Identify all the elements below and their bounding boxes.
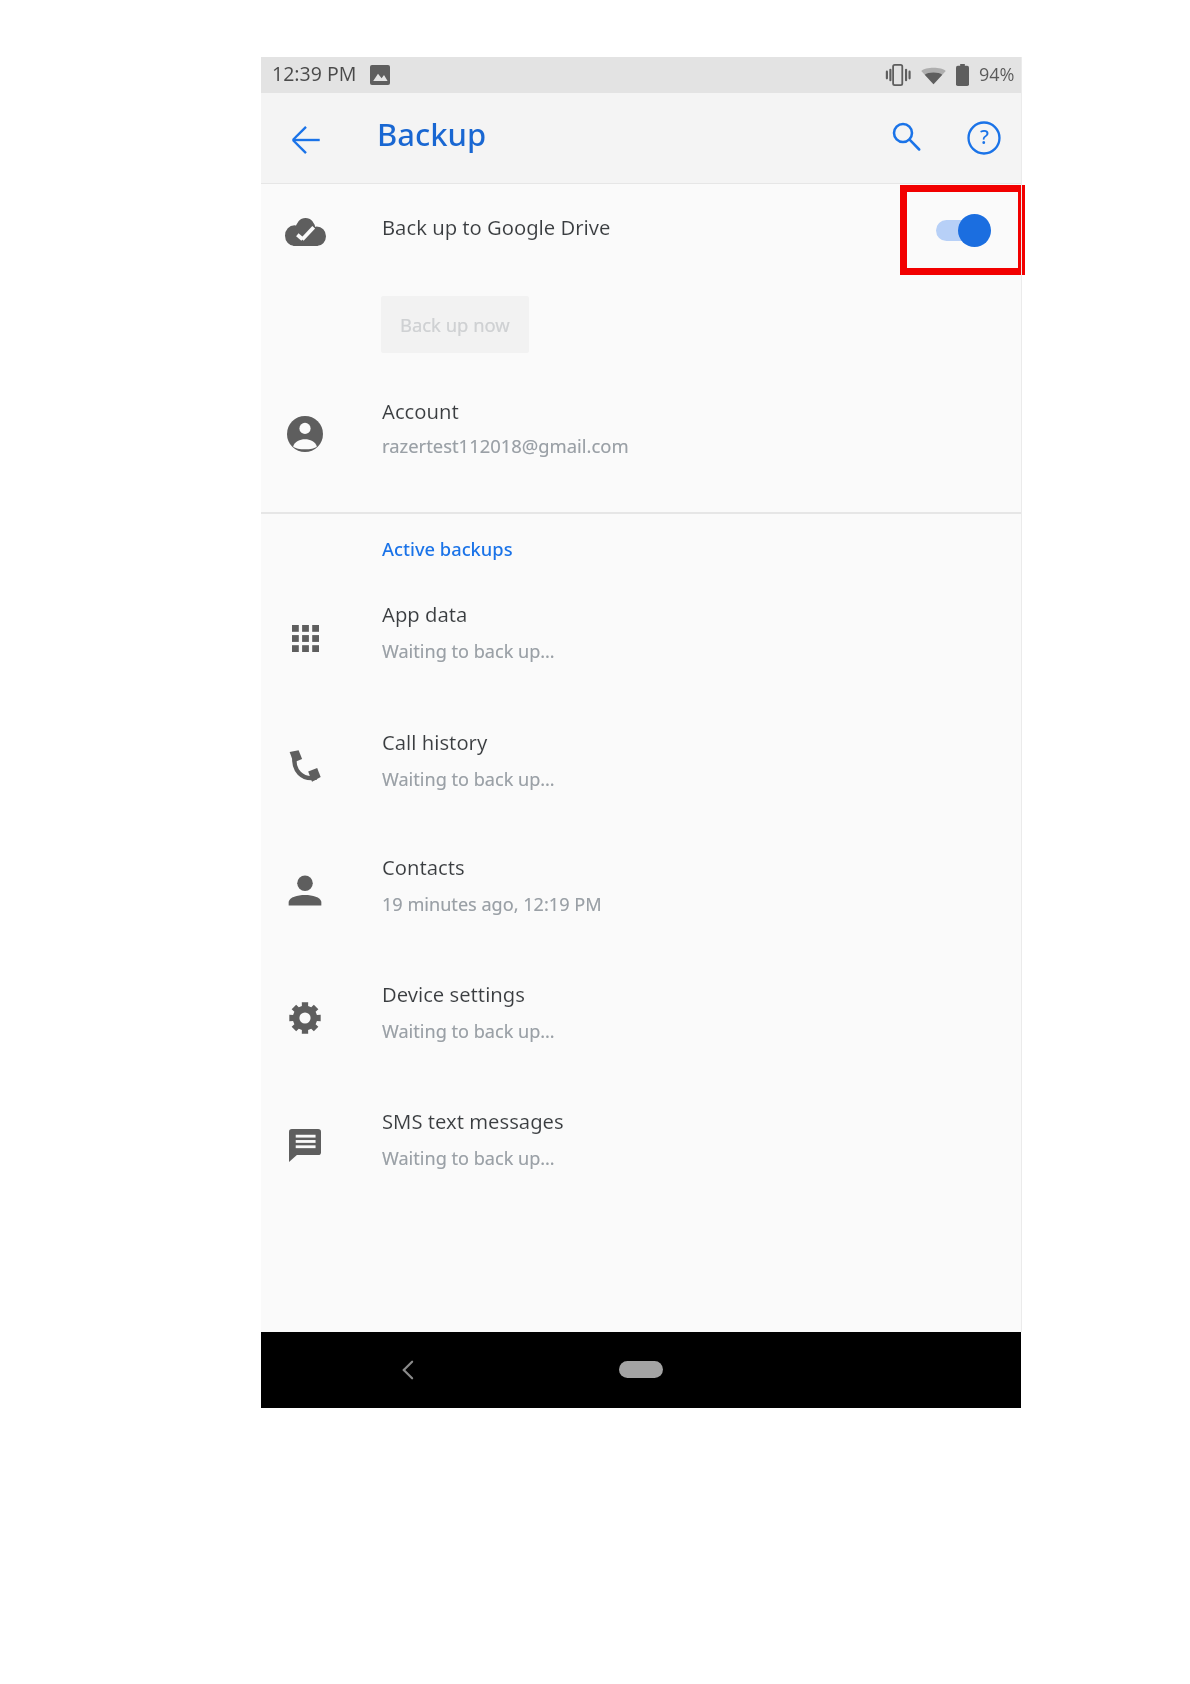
staticText: Device settings bbox=[382, 980, 525, 1008]
staticText: ? bbox=[980, 123, 989, 150]
button[interactable]: Back up to Google Drive bbox=[261, 184, 1021, 274]
button[interactable]: Contacts bbox=[261, 829, 1021, 939]
staticText: Back up to Google Drive bbox=[382, 213, 611, 241]
staticText: Contacts bbox=[382, 853, 465, 881]
staticText: Backup bbox=[377, 113, 487, 155]
staticText: Account bbox=[382, 397, 459, 425]
staticText: razertest112018@gmail.com bbox=[382, 433, 629, 458]
staticText: Waiting to back up… bbox=[382, 1019, 555, 1044]
button[interactable]: Back up to Google Drive toggle bbox=[916, 198, 1010, 262]
staticText: Waiting to back up… bbox=[382, 1146, 555, 1171]
staticText: Call history bbox=[382, 728, 488, 756]
button[interactable]: Back up now bbox=[381, 296, 529, 353]
button[interactable]: Navigate up bbox=[280, 114, 332, 166]
button[interactable]: Help bbox=[956, 110, 1012, 166]
staticText: 94% bbox=[979, 62, 1015, 87]
staticText: Active backups bbox=[382, 536, 513, 561]
staticText: Waiting to back up… bbox=[382, 767, 555, 792]
staticText: Back up now bbox=[400, 312, 510, 337]
staticText: Waiting to back up… bbox=[382, 639, 555, 664]
button[interactable]: Home bbox=[619, 1361, 663, 1378]
button[interactable]: Call history bbox=[261, 704, 1021, 814]
staticText: App data bbox=[382, 600, 468, 628]
button[interactable]: Device settings bbox=[261, 956, 1021, 1066]
staticText: 19 minutes ago, 12:19 PM bbox=[382, 892, 602, 917]
button[interactable]: Back bbox=[382, 1344, 433, 1395]
button[interactable]: Search bbox=[878, 108, 934, 164]
button[interactable]: SMS text messages bbox=[261, 1083, 1021, 1193]
button[interactable]: App data bbox=[261, 576, 1021, 686]
staticText: 12:39 PM bbox=[272, 60, 357, 87]
staticText: SMS text messages bbox=[382, 1107, 564, 1135]
button[interactable]: Account bbox=[261, 378, 1021, 488]
